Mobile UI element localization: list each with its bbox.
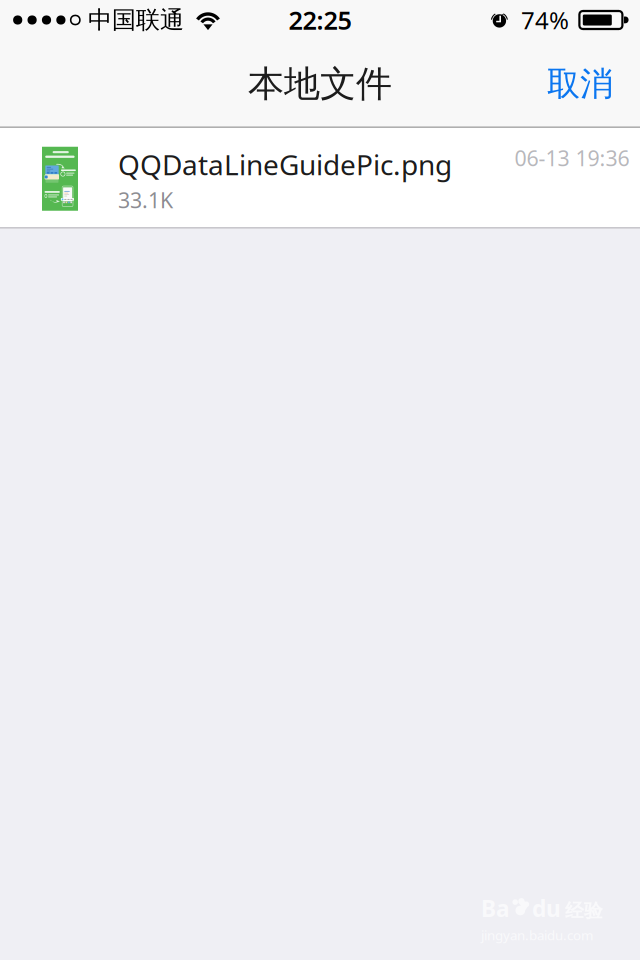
staticText: 中国联通 bbox=[88, 5, 184, 35]
staticText: 74% bbox=[521, 4, 569, 36]
staticText: du bbox=[532, 893, 561, 923]
staticText: 取消 bbox=[547, 63, 613, 104]
staticText: 33.1K bbox=[118, 186, 173, 214]
staticText: 本地文件 bbox=[248, 62, 392, 106]
button[interactable]: 取消 bbox=[533, 47, 627, 120]
staticText: QQDataLineGuidePic.png bbox=[118, 146, 452, 183]
button[interactable]: QQDataLineGuidePic.png bbox=[0, 128, 640, 227]
staticText: 22:25 bbox=[288, 3, 351, 37]
staticText: 经验 bbox=[565, 899, 603, 922]
staticText: Ba bbox=[481, 893, 510, 923]
staticText: 06-13 19:36 bbox=[514, 144, 629, 172]
